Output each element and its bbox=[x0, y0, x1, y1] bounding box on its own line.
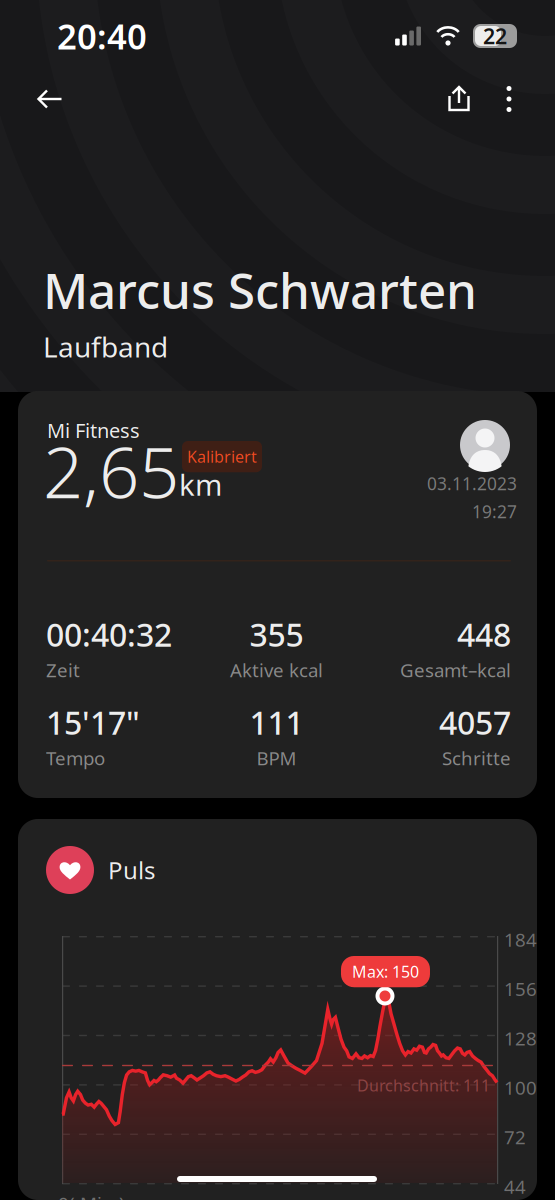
staticText: 22 bbox=[483, 22, 507, 50]
staticText: 156 bbox=[504, 976, 537, 1001]
staticText: Puls bbox=[108, 854, 155, 886]
staticText: Durchschnitt: 111 bbox=[357, 1075, 490, 1096]
staticText: 355 bbox=[249, 613, 303, 655]
staticText: km bbox=[179, 465, 222, 504]
staticText: Zeit bbox=[46, 657, 80, 682]
staticText: Marcus Schwarten bbox=[43, 257, 477, 322]
staticText: 20:40 bbox=[57, 13, 147, 59]
staticText: 2,65 bbox=[43, 424, 179, 518]
button[interactable]: Share bbox=[432, 72, 486, 126]
staticText: BPM bbox=[256, 745, 296, 770]
staticText: 03.11.2023 bbox=[427, 472, 517, 495]
staticText: 44 bbox=[504, 1174, 526, 1199]
staticText: 0( Min.) bbox=[58, 1191, 125, 1200]
staticText: 184 bbox=[504, 927, 537, 952]
staticText: Laufband bbox=[43, 328, 168, 365]
staticText: 00:40:32 bbox=[46, 613, 172, 655]
button[interactable]: More options bbox=[486, 72, 532, 126]
staticText: Kalibriert bbox=[187, 446, 257, 467]
staticText: Gesamt–kcal bbox=[400, 657, 511, 682]
staticText: Mi Fitness bbox=[47, 417, 140, 444]
staticText: 128 bbox=[504, 1026, 537, 1051]
staticText: Max: 150 bbox=[352, 961, 419, 982]
staticText: 100 bbox=[504, 1075, 537, 1100]
staticText: 448 bbox=[457, 613, 511, 655]
staticText: 111 bbox=[249, 701, 303, 743]
button[interactable]: Back bbox=[23, 72, 77, 126]
staticText: 4057 bbox=[439, 701, 511, 743]
staticText: 19:27 bbox=[472, 500, 517, 523]
staticText: 15'17" bbox=[46, 701, 140, 743]
staticText: Schritte bbox=[442, 745, 511, 770]
staticText: Aktive kcal bbox=[230, 657, 323, 682]
staticText: 72 bbox=[504, 1125, 526, 1149]
staticText: Tempo bbox=[46, 745, 105, 770]
